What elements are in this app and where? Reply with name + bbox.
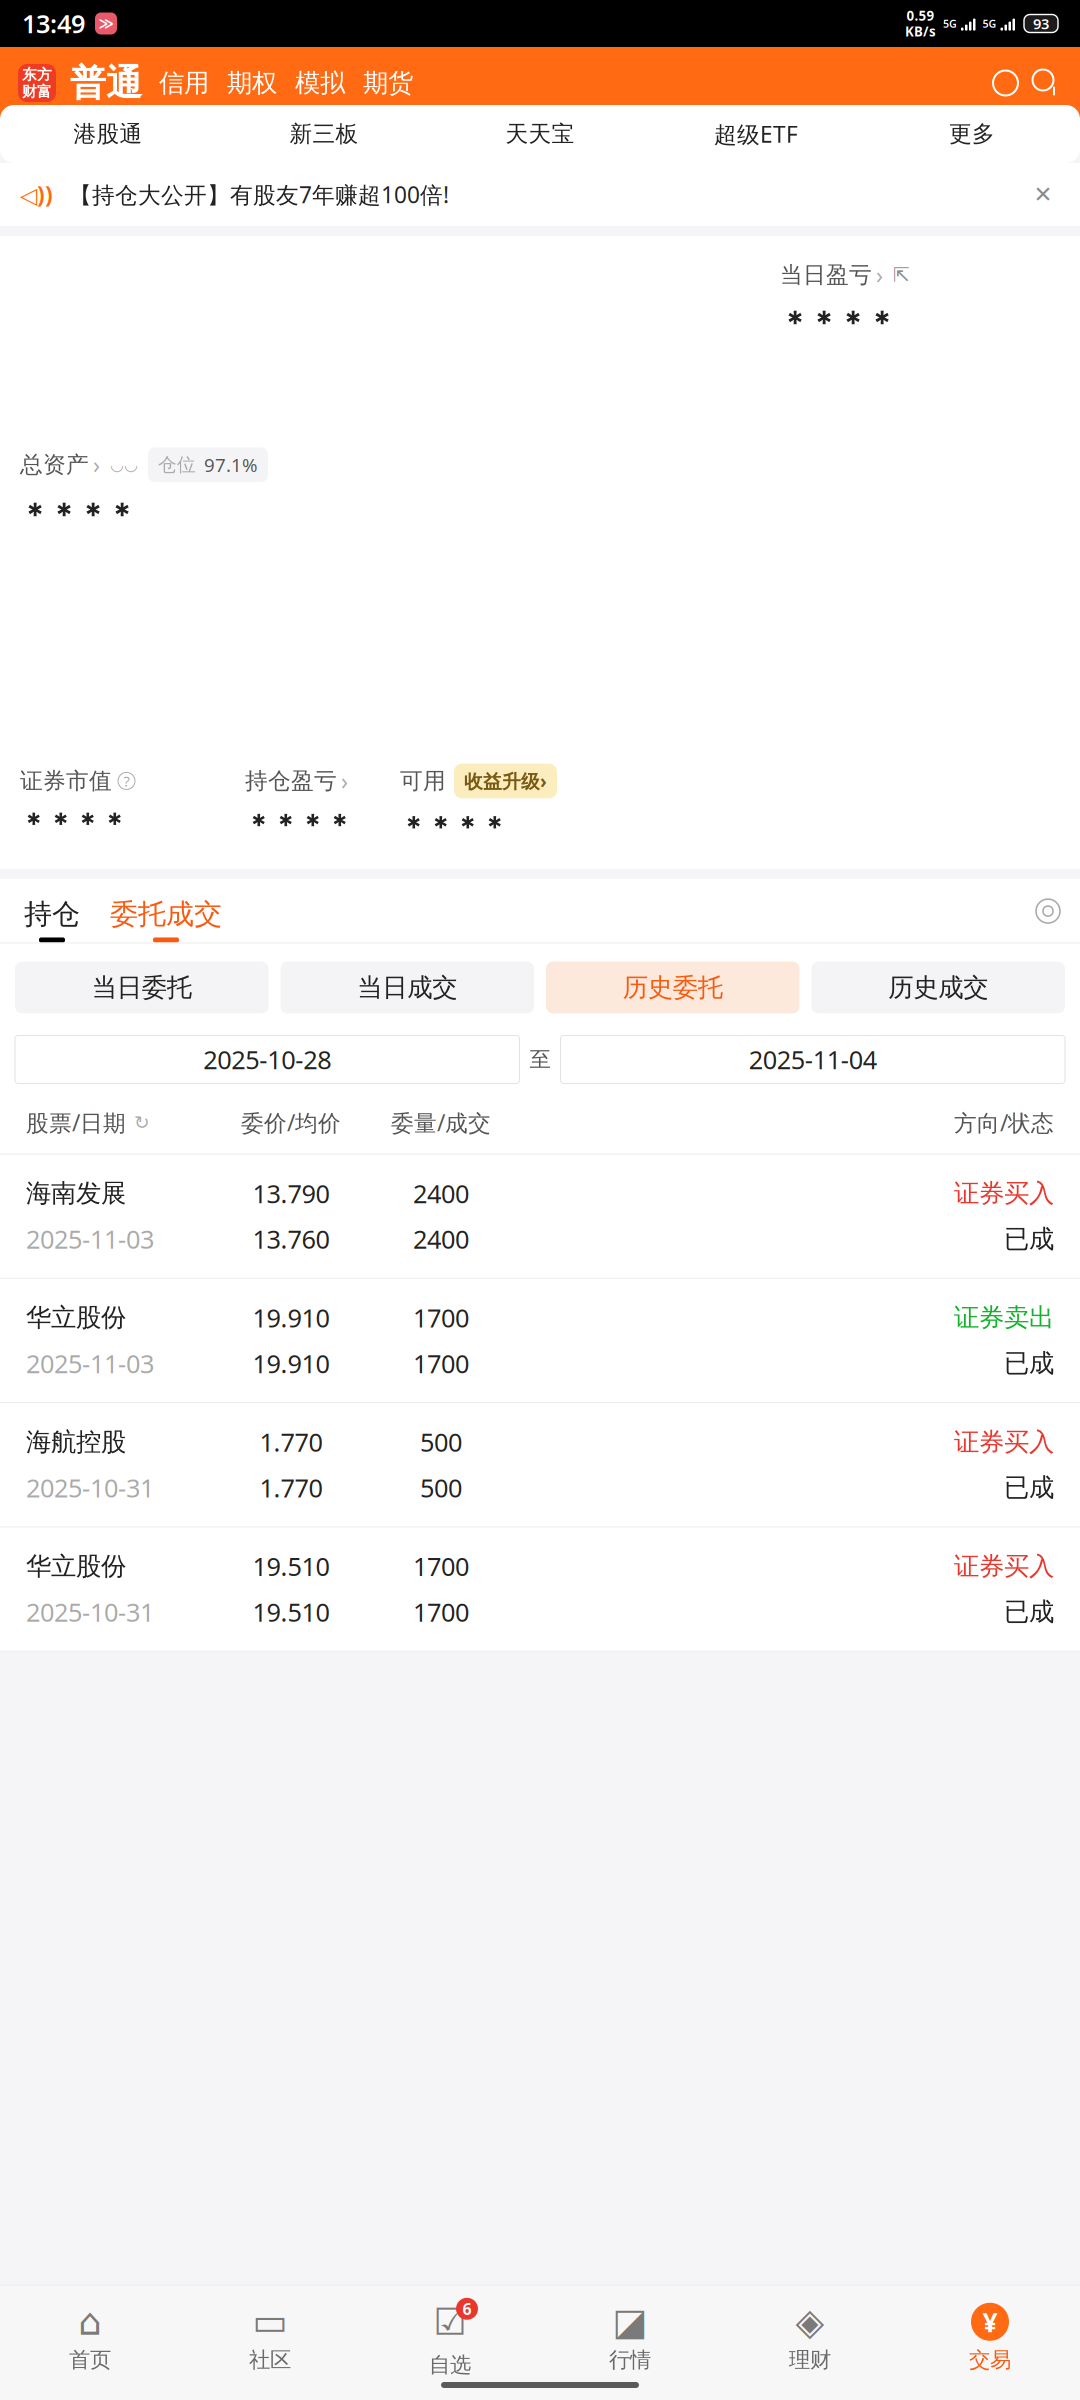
staticText: 仓位 xyxy=(158,453,196,476)
button[interactable]: 搜索 xyxy=(1026,67,1062,99)
button[interactable]: 普通 xyxy=(56,61,150,105)
button[interactable]: 新三板 xyxy=(216,105,432,163)
staticText: ☑ xyxy=(433,2301,466,2343)
staticText: 期权 xyxy=(227,67,277,98)
staticText: ＊＊＊＊ xyxy=(20,496,136,532)
staticText: 海航控股 xyxy=(26,1426,126,1457)
staticText: 1700 xyxy=(413,1301,469,1334)
button[interactable]: 华立股份 xyxy=(0,1279,1080,1402)
staticText: 2400 xyxy=(413,1177,469,1210)
button[interactable]: 海南发展 xyxy=(0,1155,1080,1278)
staticText: 当日委托 xyxy=(92,972,192,1003)
button[interactable]: 天天宝 xyxy=(432,105,648,163)
staticText: 13:49 xyxy=(22,7,85,40)
staticText: 500 xyxy=(420,1425,462,1459)
staticText: 5G xyxy=(982,16,996,31)
staticText: ⌂ xyxy=(78,2301,102,2343)
staticText: 证券买入 xyxy=(954,1178,1054,1209)
button[interactable]: ⌂ xyxy=(0,2303,180,2373)
staticText: 期货 xyxy=(363,67,413,98)
button[interactable]: ☑ xyxy=(360,2298,540,2378)
staticText: 信用 xyxy=(159,67,209,98)
button[interactable]: 收益升级› xyxy=(454,763,557,798)
button[interactable]: 期权 xyxy=(218,67,286,98)
button[interactable]: 委托成交 xyxy=(84,897,226,942)
button[interactable]: 更多 xyxy=(864,105,1080,163)
staticText: 海南发展 xyxy=(26,1178,126,1209)
staticText: ? xyxy=(123,771,129,791)
staticText: 更多 xyxy=(949,120,995,148)
staticText: 首页 xyxy=(69,2347,111,2373)
button[interactable]: 当日盈亏 xyxy=(780,260,910,290)
staticText: 收益升级› xyxy=(464,768,547,793)
button[interactable]: 当日成交 xyxy=(280,961,534,1013)
staticText: ＊＊＊＊ xyxy=(780,304,896,340)
staticText: 理财 xyxy=(789,2347,831,2373)
staticText: 2025-10-31 xyxy=(26,1471,154,1504)
staticText: 93 xyxy=(1033,14,1049,33)
staticText: 证券市值 xyxy=(20,767,112,795)
staticText: 财富 xyxy=(22,82,52,100)
staticText: › xyxy=(341,766,348,796)
button[interactable]: ◈ xyxy=(720,2303,900,2373)
staticText: 社区 xyxy=(249,2347,291,2373)
staticText: 方向/状态 xyxy=(954,1107,1054,1138)
button[interactable]: 2025-11-04 xyxy=(560,1035,1065,1083)
staticText: 股票/日期 xyxy=(26,1107,126,1138)
staticText: ＊＊＊＊ xyxy=(20,807,128,840)
button[interactable]: 东方财富 xyxy=(18,64,56,102)
button[interactable]: 关闭 xyxy=(1026,177,1060,211)
staticText: 1700 xyxy=(413,1346,469,1380)
staticText: 500 xyxy=(420,1471,462,1504)
staticText: 普通 xyxy=(70,61,142,105)
staticText: 已成 xyxy=(1004,1596,1054,1627)
staticText: 天天宝 xyxy=(505,120,574,148)
staticText: 港股通 xyxy=(73,120,142,148)
staticText: 交易 xyxy=(969,2347,1011,2373)
button[interactable]: 设置 xyxy=(1036,897,1060,923)
button[interactable]: ◪ xyxy=(540,2303,720,2373)
staticText: 行情 xyxy=(609,2347,651,2373)
button[interactable]: 证券市值 xyxy=(20,767,135,795)
button[interactable]: 2025-10-28 xyxy=(15,1035,519,1083)
staticText: 持仓盈亏 xyxy=(245,767,337,795)
button[interactable]: 当日委托 xyxy=(15,961,268,1013)
staticText: 委价/均价 xyxy=(241,1107,341,1138)
staticText: 超级ETF xyxy=(714,119,798,149)
button[interactable]: 历史成交 xyxy=(811,961,1065,1013)
button[interactable]: ▭ xyxy=(180,2303,360,2373)
staticText: 1700 xyxy=(413,1549,469,1583)
staticText: 0.59 xyxy=(906,7,934,24)
staticText: 已成 xyxy=(1004,1223,1054,1255)
button[interactable]: 模拟 xyxy=(286,67,354,98)
button[interactable]: 隐藏金额 xyxy=(100,456,144,474)
staticText: ↻ xyxy=(997,72,1014,94)
staticText: ◁)) xyxy=(20,179,53,209)
staticText: 证券买入 xyxy=(954,1551,1054,1582)
staticText: ◪ xyxy=(612,2301,647,2343)
staticText: 委托成交 xyxy=(110,897,222,931)
button[interactable]: 信用 xyxy=(150,67,218,98)
staticText: 2025-11-03 xyxy=(26,1346,154,1380)
button[interactable]: 持仓 xyxy=(20,897,84,942)
staticText: 6 xyxy=(462,2298,471,2319)
button[interactable]: 刷新 xyxy=(985,70,1026,95)
button[interactable]: 期货 xyxy=(354,67,422,98)
button[interactable]: 华立股份 xyxy=(0,1527,1080,1651)
button[interactable]: ¥ xyxy=(900,2303,1080,2373)
staticText: ＊＊＊＊ xyxy=(400,810,508,843)
staticText: 新三板 xyxy=(289,120,358,148)
button[interactable]: 历史委托 xyxy=(546,961,799,1013)
staticText: 19.910 xyxy=(252,1346,329,1380)
button[interactable]: 海航控股 xyxy=(0,1403,1080,1526)
button[interactable]: 持仓盈亏 xyxy=(245,766,348,796)
staticText: ◈ xyxy=(795,2301,824,2343)
button[interactable]: 超级ETF xyxy=(648,105,864,163)
staticText: 1.770 xyxy=(259,1425,322,1459)
button[interactable]: 港股通 xyxy=(0,105,216,163)
staticText: 5G xyxy=(943,16,957,31)
staticText: ◡◡ xyxy=(110,456,138,474)
staticText: 委量/成交 xyxy=(391,1107,491,1138)
button[interactable]: 总资产 xyxy=(20,450,100,480)
staticText: 自选 xyxy=(429,2352,471,2378)
